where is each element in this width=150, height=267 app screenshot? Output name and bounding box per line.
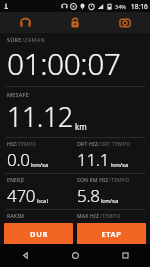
button[interactable]: MESAFE <box>0 87 150 137</box>
staticText: /ORT TEMPO <box>98 141 131 148</box>
button[interactable]: Back <box>0 244 50 267</box>
staticText: kcal <box>37 197 48 205</box>
staticText: ORT HIZ <box>77 141 98 148</box>
staticText: DUR <box>30 229 48 239</box>
button[interactable]: Lock <box>50 12 100 33</box>
staticText: /TEMPO <box>100 213 121 220</box>
staticText: ETAP <box>101 229 122 239</box>
button[interactable]: SON KM HIZ <box>77 177 150 207</box>
button[interactable]: ETAP <box>77 223 146 244</box>
button[interactable]: ORT HIZ <box>77 141 150 171</box>
staticText: HIZ <box>7 141 16 148</box>
staticText: 5.8 <box>77 184 100 207</box>
staticText: km <box>75 121 87 132</box>
staticText: 01:00:07 <box>7 43 121 84</box>
button[interactable]: Camera <box>100 12 150 33</box>
button[interactable]: Recent apps <box>100 244 150 267</box>
staticText: 11.1 <box>77 148 110 171</box>
staticText: /TEMPO <box>109 177 130 184</box>
staticText: MESAFE <box>7 91 29 98</box>
staticText: SON KM HIZ <box>77 177 109 184</box>
staticText: km/sa <box>101 197 119 205</box>
staticText: 470 <box>7 184 36 207</box>
staticText: RAKIM <box>7 213 24 220</box>
staticText: 11.12 <box>7 98 73 135</box>
staticText: SÜRE <box>7 36 22 43</box>
staticText: km/sa <box>111 161 129 169</box>
staticText: /ZAMAN <box>22 36 45 43</box>
staticText: 0.0 <box>7 148 30 171</box>
staticText: /TEMPO <box>16 141 37 148</box>
staticText: 34% <box>115 3 126 10</box>
staticText: km/sa <box>31 161 49 169</box>
button[interactable]: MAX HIZ <box>77 213 150 221</box>
staticText: 18:16 <box>131 2 148 11</box>
button[interactable]: Home <box>50 244 100 267</box>
staticText: MAX HIZ <box>77 213 100 220</box>
button[interactable]: HIZ <box>7 141 75 171</box>
button[interactable]: Audio <box>0 12 50 33</box>
staticText: ENERJİ <box>7 177 25 184</box>
button[interactable]: SÜRE <box>0 33 150 86</box>
button[interactable]: ENERJİ <box>7 177 75 207</box>
button[interactable]: RAKIM <box>7 213 75 221</box>
button[interactable]: DUR <box>4 223 73 244</box>
